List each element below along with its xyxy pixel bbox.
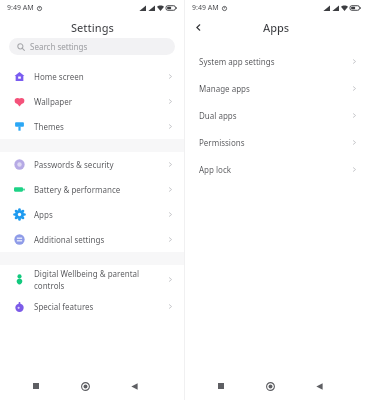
button[interactable]: Search settings bbox=[9, 38, 175, 55]
button[interactable]: Digital Wellbeing & parental bbox=[0, 265, 184, 294]
staticText: Settings bbox=[71, 20, 114, 35]
staticText: Wallpaper bbox=[34, 96, 73, 107]
button[interactable]: Passwords & security bbox=[0, 152, 184, 177]
staticText: App lock bbox=[199, 164, 232, 175]
staticText: Passwords & security bbox=[34, 159, 114, 170]
staticText: Home screen bbox=[34, 71, 84, 82]
button[interactable]: Back bbox=[309, 376, 329, 396]
button[interactable]: Back bbox=[124, 376, 144, 396]
staticText: 9:49 AM bbox=[7, 3, 34, 13]
button[interactable]: Additional settings bbox=[0, 227, 184, 252]
staticText: Manage apps bbox=[199, 83, 250, 94]
staticText: Search settings bbox=[30, 41, 88, 52]
button[interactable]: Battery & performance bbox=[0, 177, 184, 202]
button[interactable]: App lock bbox=[185, 156, 368, 183]
staticText: System app settings bbox=[199, 56, 275, 67]
staticText: Battery & performance bbox=[34, 184, 121, 195]
staticText: Apps bbox=[263, 20, 290, 35]
button[interactable]: Home screen bbox=[0, 64, 184, 89]
button[interactable]: Permissions bbox=[185, 129, 368, 156]
button[interactable]: Home bbox=[75, 376, 95, 396]
staticText: Digital Wellbeing & parental bbox=[34, 268, 140, 279]
button[interactable]: Recents bbox=[211, 376, 231, 396]
button[interactable]: System app settings bbox=[185, 48, 368, 75]
staticText: controls bbox=[34, 280, 65, 291]
button[interactable]: Home bbox=[260, 376, 280, 396]
staticText: Dual apps bbox=[199, 110, 237, 121]
staticText: Additional settings bbox=[34, 234, 105, 245]
button[interactable]: Themes bbox=[0, 114, 184, 139]
staticText: Permissions bbox=[199, 137, 245, 148]
staticText: Themes bbox=[34, 121, 64, 132]
button[interactable]: Recents bbox=[26, 376, 46, 396]
staticText: Apps bbox=[34, 209, 53, 220]
staticText: Special features bbox=[34, 301, 94, 312]
button[interactable]: Wallpaper bbox=[0, 89, 184, 114]
button[interactable]: Apps bbox=[0, 202, 184, 227]
button[interactable]: Dual apps bbox=[185, 102, 368, 129]
button[interactable]: Special features bbox=[0, 294, 184, 319]
button[interactable]: Manage apps bbox=[185, 75, 368, 102]
staticText: 9:49 AM bbox=[192, 3, 219, 13]
button[interactable]: Back bbox=[191, 17, 205, 37]
